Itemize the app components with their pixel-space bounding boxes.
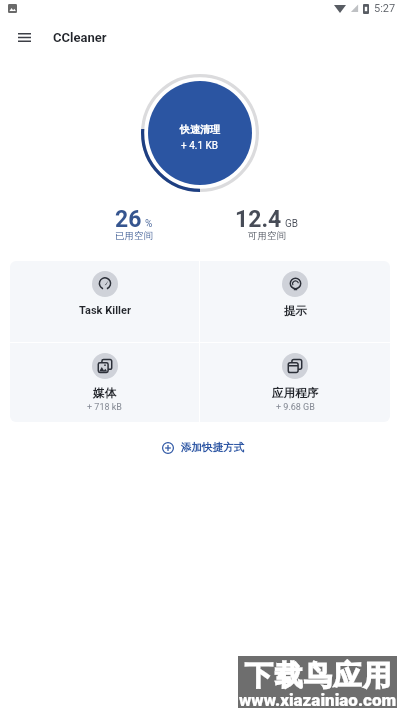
button[interactable]: 快速清理	[148, 81, 252, 185]
staticText: 媒体	[93, 386, 116, 400]
staticText: Task Killer	[79, 304, 131, 317]
button[interactable]: Menu	[0, 16, 48, 58]
button[interactable]: 应用程序	[200, 343, 390, 422]
button[interactable]: Task Killer	[10, 261, 199, 342]
staticText: 应用程序	[272, 386, 318, 400]
staticText: 已用空间	[115, 230, 153, 242]
staticText: 下载鸟应用	[244, 658, 392, 693]
staticText: 添加快捷方式	[181, 441, 244, 454]
staticText: %	[145, 218, 153, 230]
staticText: 5:27	[374, 2, 396, 15]
button[interactable]: 提示	[200, 261, 390, 342]
staticText: + 4.1 KB	[181, 140, 219, 152]
staticText: www.xiazainiao.com	[239, 690, 397, 707]
staticText: + 9.68 GB	[276, 402, 315, 413]
staticText: GB	[285, 218, 299, 230]
button[interactable]: 媒体	[10, 343, 199, 422]
staticText: 26	[115, 206, 142, 233]
staticText: 12.4	[235, 206, 282, 233]
staticText: 快速清理	[180, 123, 220, 136]
staticText: 提示	[284, 304, 307, 318]
staticText: 可用空间	[248, 230, 286, 242]
staticText: CCleaner	[53, 30, 107, 45]
button[interactable]: 添加快捷方式	[154, 436, 252, 457]
staticText: + 718 kB	[87, 402, 122, 413]
